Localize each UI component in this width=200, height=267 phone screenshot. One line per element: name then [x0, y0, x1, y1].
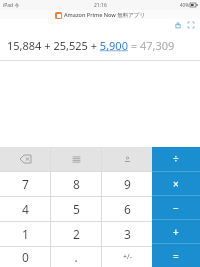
- button[interactable]: 6: [102, 197, 152, 221]
- button[interactable]: Function key: [51, 147, 101, 171]
- button[interactable]: Function key: [0, 147, 50, 171]
- button[interactable]: +: [152, 220, 200, 243]
- staticText: 4: [22, 201, 29, 217]
- button[interactable]: 8: [51, 172, 101, 196]
- staticText: 21:16: [94, 2, 107, 9]
- button[interactable]: 0: [0, 247, 50, 267]
- staticText: 1: [22, 226, 29, 242]
- button[interactable]: +/-: [102, 247, 152, 267]
- staticText: =: [173, 249, 179, 263]
- staticText: iPad 令: [3, 2, 20, 9]
- staticText: 7: [22, 176, 29, 192]
- button[interactable]: 5: [51, 197, 101, 221]
- button[interactable]: =: [152, 244, 200, 267]
- staticText: 0: [22, 249, 29, 265]
- staticText: −: [173, 201, 179, 215]
- button[interactable]: 7: [0, 172, 50, 196]
- button[interactable]: 9: [102, 172, 152, 196]
- staticText: .: [74, 249, 78, 265]
- staticText: Amazon Prime Now 無料アプリ: [64, 11, 146, 19]
- staticText: 6: [124, 201, 131, 217]
- staticText: 8: [73, 176, 80, 192]
- staticText: 2: [73, 226, 80, 242]
- button[interactable]: 3: [102, 222, 152, 246]
- button[interactable]: 1: [0, 222, 50, 246]
- staticText: ÷: [173, 152, 179, 166]
- button[interactable]: Share: [173, 20, 182, 29]
- staticText: +: [173, 225, 179, 239]
- staticText: +/-: [123, 252, 132, 262]
- button[interactable]: ÷: [152, 147, 200, 171]
- staticText: 3: [124, 226, 131, 242]
- button[interactable]: 4: [0, 197, 50, 221]
- button[interactable]: 2: [51, 222, 101, 246]
- staticText: 9: [124, 176, 131, 192]
- staticText: 40%: [180, 2, 189, 8]
- button[interactable]: .: [51, 247, 101, 267]
- button[interactable]: Fullscreen: [186, 20, 195, 29]
- button[interactable]: −: [152, 196, 200, 219]
- button[interactable]: ×: [152, 172, 200, 195]
- staticText: 15,884 + 25,525 + 5,900 = 47,309: [7, 38, 175, 53]
- staticText: 5: [73, 201, 80, 217]
- staticText: ×: [173, 177, 179, 191]
- button[interactable]: Function key: [102, 147, 152, 171]
